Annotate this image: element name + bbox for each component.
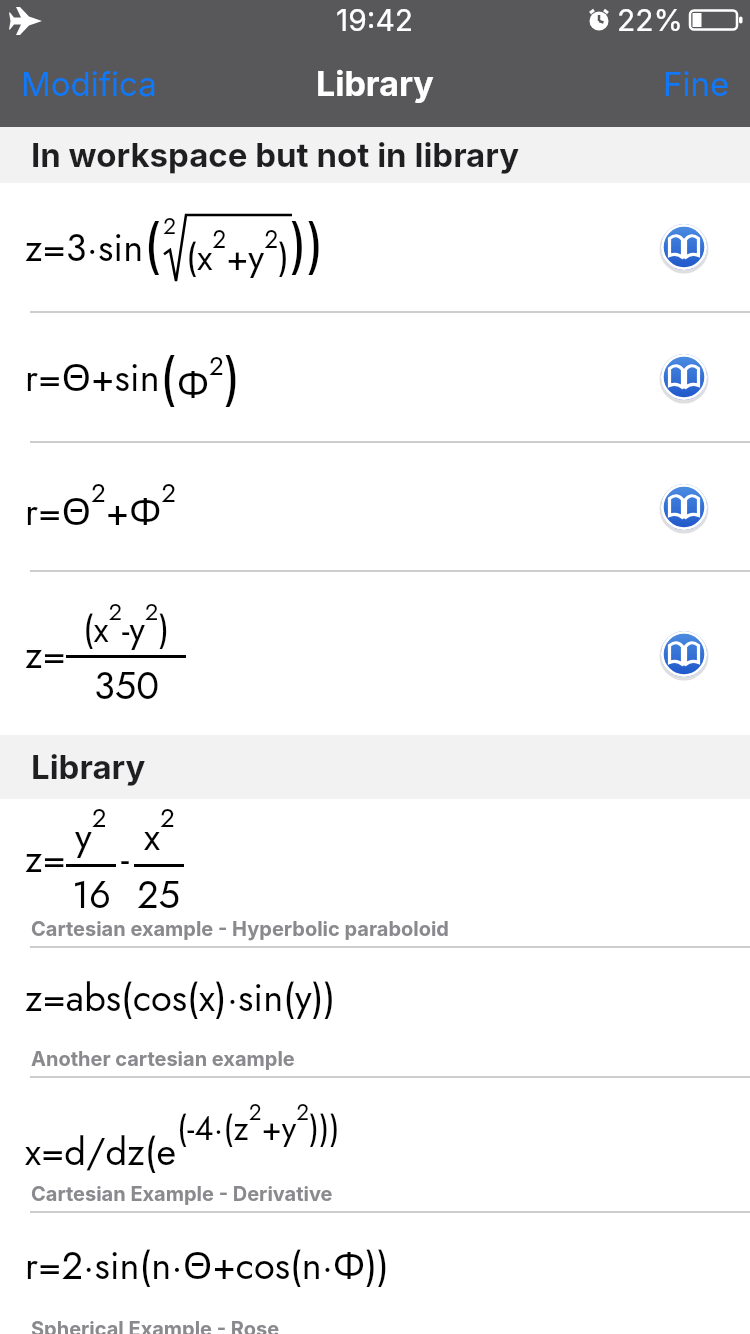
- button[interactable]: r=Θ2+Φ2: [0, 443, 750, 572]
- button[interactable]: r=2·sin(n·Θ+cos(n·Φ)): [0, 1213, 750, 1334]
- staticText: )): [290, 206, 324, 284]
- button[interactable]: [659, 222, 709, 272]
- staticText: z=: [25, 831, 66, 886]
- button[interactable]: z=abs(cos(x)·sin(y)): [0, 948, 750, 1078]
- staticText: In workspace but not in library: [31, 135, 520, 175]
- button[interactable]: z=3·sin: [0, 183, 750, 313]
- staticText: 22%: [617, 2, 684, 38]
- staticText: Cartesian Example - Derivative: [31, 1182, 333, 1206]
- staticText: 16: [72, 867, 111, 917]
- staticText: 25: [137, 867, 181, 917]
- staticText: Library: [316, 63, 434, 104]
- staticText: z=abs(cos(x)·sin(y)): [25, 970, 336, 1025]
- staticText: (-4·(z2+y2))): [177, 1096, 340, 1153]
- staticText: 19:42: [336, 2, 414, 38]
- staticText: r=Θ2+Φ2: [25, 474, 176, 539]
- button[interactable]: z=: [0, 572, 750, 735]
- button[interactable]: z=: [0, 799, 750, 948]
- staticText: Spherical Example - Rose: [31, 1317, 280, 1334]
- staticText: x=d/dz(e: [25, 1124, 177, 1179]
- button[interactable]: [659, 629, 709, 679]
- button[interactable]: [659, 352, 709, 402]
- staticText: z=: [25, 627, 66, 682]
- staticText: 350: [94, 658, 159, 713]
- staticText: -: [121, 831, 129, 886]
- staticText: y2: [75, 799, 107, 864]
- staticText: Cartesian example - Hyperbolic paraboloi…: [31, 917, 449, 941]
- staticText: 2: [163, 209, 177, 242]
- staticText: r=Θ+sin: [25, 350, 160, 405]
- staticText: (: [160, 340, 177, 415]
- staticText: (x2+y2): [186, 222, 290, 284]
- staticText: (: [144, 206, 161, 284]
- staticText: Φ2: [177, 347, 224, 409]
- staticText: x2: [144, 799, 175, 864]
- button[interactable]: x=d/dz(e: [0, 1078, 750, 1213]
- button[interactable]: [659, 482, 709, 532]
- staticText: r=2·sin(n·Θ+cos(n·Φ)): [25, 1238, 389, 1293]
- staticText: z=3·sin: [25, 220, 144, 275]
- button[interactable]: Modifica: [21, 64, 157, 104]
- button[interactable]: Fine: [663, 64, 730, 104]
- staticText: Library: [31, 747, 146, 787]
- staticText: Another cartesian example: [31, 1047, 295, 1071]
- button[interactable]: r=Θ+sin: [0, 313, 750, 443]
- staticText: (x2-y2): [83, 595, 170, 655]
- staticText: ): [224, 340, 241, 415]
